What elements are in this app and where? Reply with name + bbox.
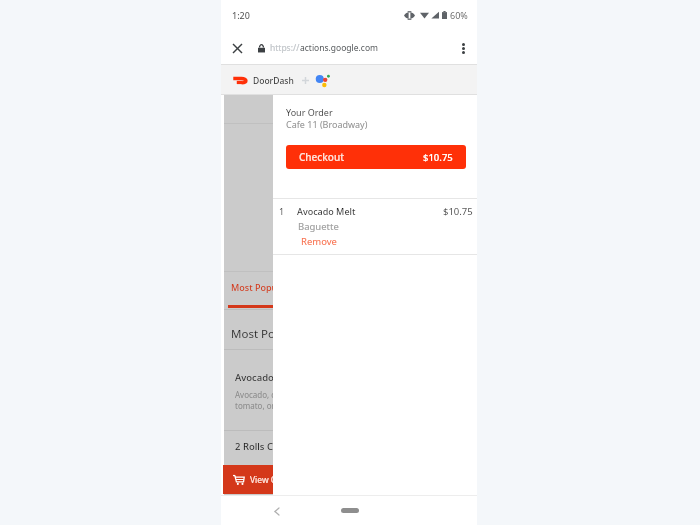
staticText: Cafe 11 (Broadway)	[286, 118, 368, 130]
staticText: Your Order	[286, 106, 333, 118]
staticText: Most Popular	[231, 281, 289, 293]
button[interactable]: Most Popular	[224, 275, 477, 309]
staticText: Avocado Melt	[235, 371, 297, 384]
staticText: 60%	[450, 9, 468, 21]
staticText: actions.google.com	[300, 42, 379, 54]
button[interactable]: Home	[341, 508, 359, 513]
button[interactable]: View Cart	[223, 465, 475, 494]
staticText: $10.75	[423, 151, 453, 164]
staticText: DoorDash	[253, 75, 294, 87]
staticText: Remove	[301, 235, 337, 248]
staticText: 1	[279, 205, 285, 217]
staticText: $10.75	[443, 205, 473, 218]
staticText: View Cart	[250, 474, 288, 486]
button[interactable]: DoorDash	[221, 65, 477, 95]
staticText: Most Popular	[231, 326, 304, 342]
staticText: Baguette	[298, 220, 339, 233]
button[interactable]: 1	[273, 199, 477, 254]
staticText: Avocado, cheddar,	[235, 389, 304, 400]
button[interactable]: Close	[226, 37, 248, 59]
staticText: tomato, onion	[235, 400, 289, 411]
button[interactable]: Remove	[301, 235, 337, 248]
staticText: Avocado Melt	[297, 205, 356, 217]
button[interactable]: 2 Rolls Croissant	[224, 431, 477, 465]
button[interactable]: Back	[268, 502, 286, 520]
staticText: 1:20	[232, 9, 250, 21]
button[interactable]: Avocado Melt	[224, 350, 477, 430]
staticText: https://	[270, 42, 300, 54]
button[interactable]: Checkout	[286, 145, 466, 169]
button[interactable]: More options	[452, 37, 474, 59]
staticText: 2 Rolls Croissant	[235, 440, 310, 453]
staticText: Checkout	[299, 150, 345, 164]
